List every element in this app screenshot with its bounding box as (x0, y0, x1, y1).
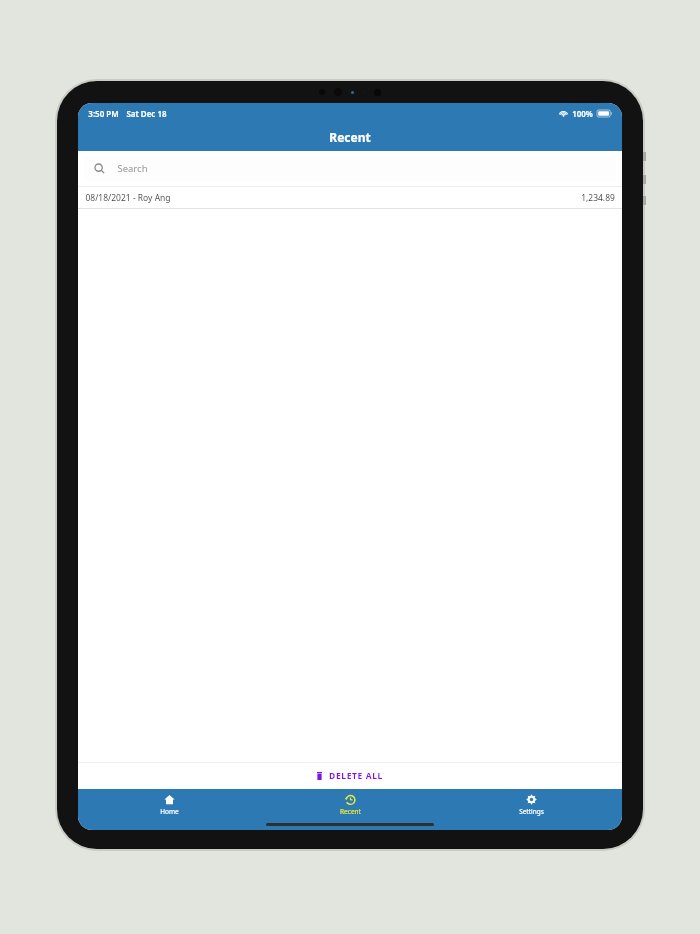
button[interactable]: Home (78, 789, 260, 830)
staticText: DELETE ALL (329, 770, 383, 782)
staticText: Recent (329, 129, 371, 145)
staticText: 1,234.89 (581, 192, 615, 204)
staticText: Settings (519, 807, 544, 816)
button[interactable]: Recent (260, 789, 441, 830)
staticText: Search (117, 162, 148, 175)
staticText: Recent (340, 807, 361, 816)
staticText: Home (160, 807, 179, 816)
staticText: Sat Dec 18 (126, 108, 167, 119)
staticText: 100% (572, 108, 593, 119)
button[interactable]: Search (84, 156, 616, 181)
button[interactable]: DELETE ALL (307, 766, 393, 786)
staticText: 08/18/2021 - Roy Ang (85, 192, 171, 204)
staticText: 3:50 PM (88, 108, 119, 119)
button[interactable]: 08/18/2021 - Roy Ang (78, 187, 622, 208)
button[interactable]: Settings (441, 789, 622, 830)
